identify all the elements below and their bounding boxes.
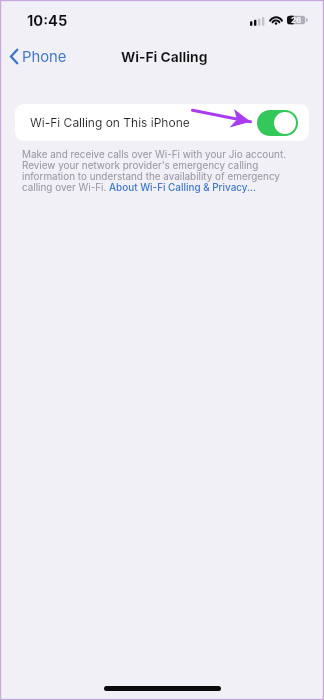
staticText: 10:45 (27, 12, 68, 30)
button[interactable]: Phone (9, 47, 67, 66)
staticText: Make and receive calls over Wi-Fi with y… (22, 148, 302, 193)
staticText: Phone (22, 48, 67, 66)
staticText: 26 (291, 15, 302, 25)
staticText: Wi-Fi Calling on This iPhone (30, 115, 190, 130)
staticText: Wi-Fi Calling (121, 49, 208, 66)
button[interactable]: Wi-Fi Calling toggle (257, 110, 298, 136)
button[interactable]: Wi-Fi Calling on This iPhone (15, 104, 309, 141)
